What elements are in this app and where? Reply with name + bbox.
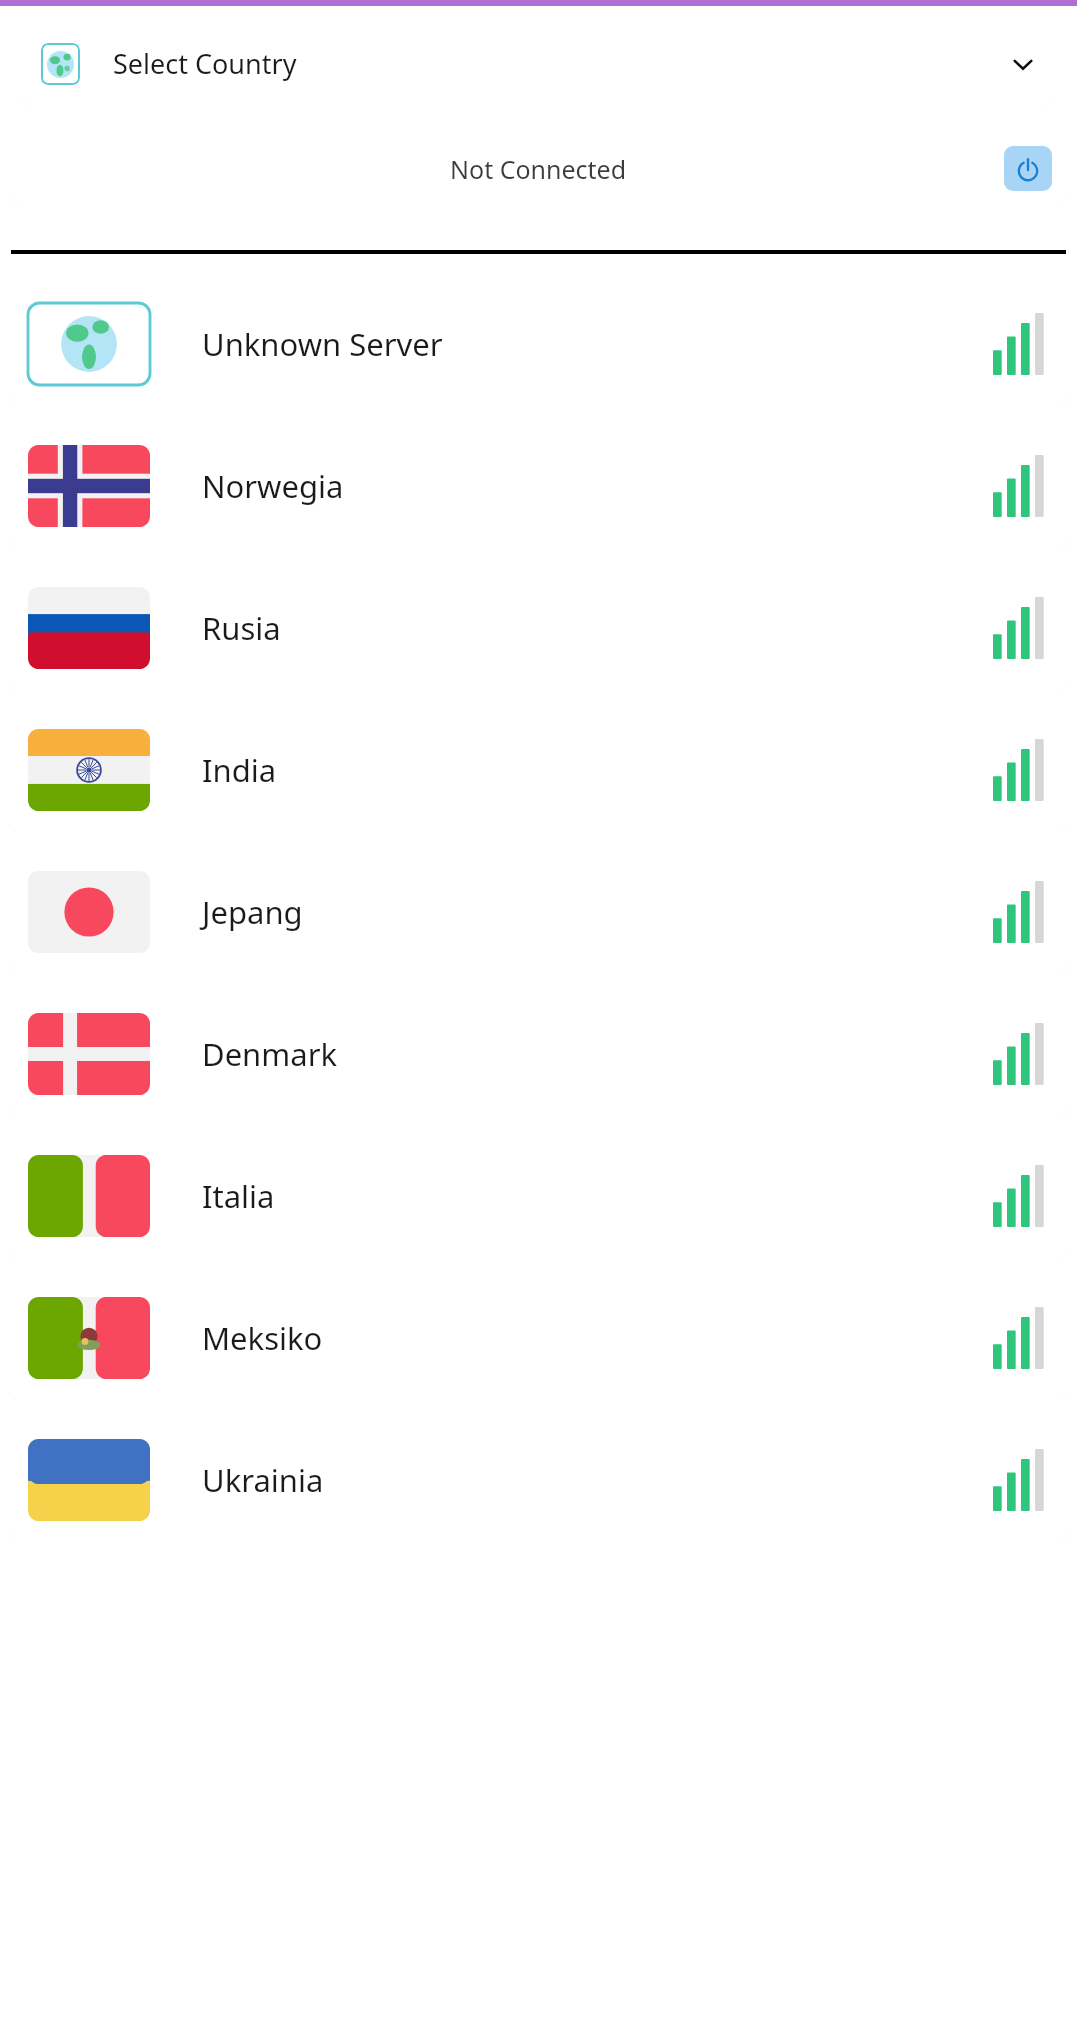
button[interactable]: Jepang bbox=[8, 850, 1069, 974]
button[interactable]: Unknown Server bbox=[8, 282, 1069, 406]
button[interactable]: Norwegia bbox=[8, 424, 1069, 548]
button[interactable]: Denmark bbox=[8, 992, 1069, 1116]
button[interactable]: India bbox=[8, 708, 1069, 832]
button[interactable]: Meksiko bbox=[8, 1276, 1069, 1400]
button[interactable]: Ukrainia bbox=[8, 1418, 1069, 1542]
button[interactable]: Rusia bbox=[8, 566, 1069, 690]
staticText: Norwegia bbox=[202, 465, 344, 507]
staticText: Italia bbox=[202, 1175, 275, 1217]
staticText: Meksiko bbox=[202, 1317, 323, 1359]
button[interactable]: Italia bbox=[8, 1134, 1069, 1258]
staticText: Unknown Server bbox=[202, 323, 443, 365]
staticText: Ukrainia bbox=[202, 1459, 324, 1501]
button[interactable]: Connect bbox=[1004, 146, 1052, 191]
other: Expand bbox=[1010, 51, 1036, 77]
staticText: Not Connected bbox=[450, 152, 627, 186]
staticText: India bbox=[202, 749, 277, 791]
staticText: Denmark bbox=[202, 1033, 338, 1075]
staticText: Jepang bbox=[202, 891, 303, 933]
staticText: Rusia bbox=[202, 607, 281, 649]
staticText: Select Country bbox=[113, 45, 297, 82]
button[interactable]: Select Country bbox=[23, 21, 1054, 106]
